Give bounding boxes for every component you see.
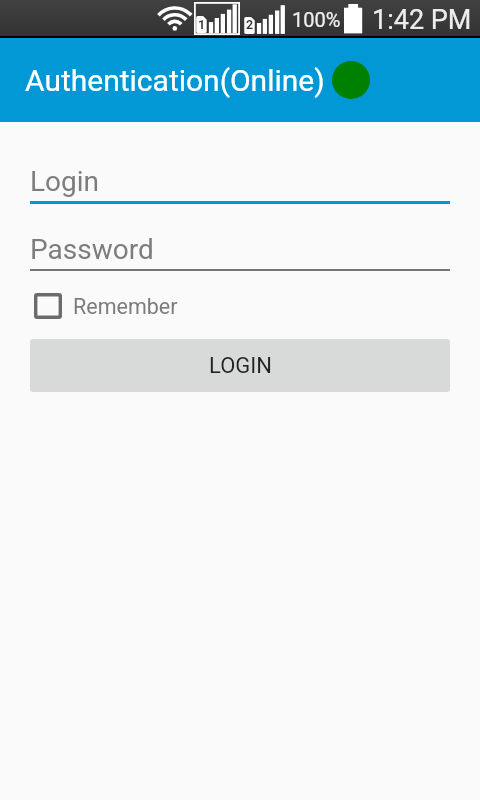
staticText: Password [30,233,154,266]
button[interactable]: Login [30,160,450,204]
other: SIM 1 signal full [194,2,240,35]
staticText: 1 [198,17,206,32]
staticText: 1:42 PM [372,4,472,36]
button[interactable]: Remember [26,286,196,324]
other: SIM 2 signal full [244,4,286,36]
button[interactable]: Online status indicator [332,61,370,99]
other: Battery full [344,4,364,35]
staticText: Remember [73,294,178,319]
staticText: Authentication(Online) [25,63,325,98]
button[interactable]: LOGIN [30,339,450,392]
staticText: 100% [292,8,341,31]
other: Wi-Fi connected [155,2,195,34]
button[interactable]: Password [30,228,450,271]
staticText: Login [30,165,100,198]
staticText: 2 [246,17,254,32]
staticText: LOGIN [209,353,272,379]
